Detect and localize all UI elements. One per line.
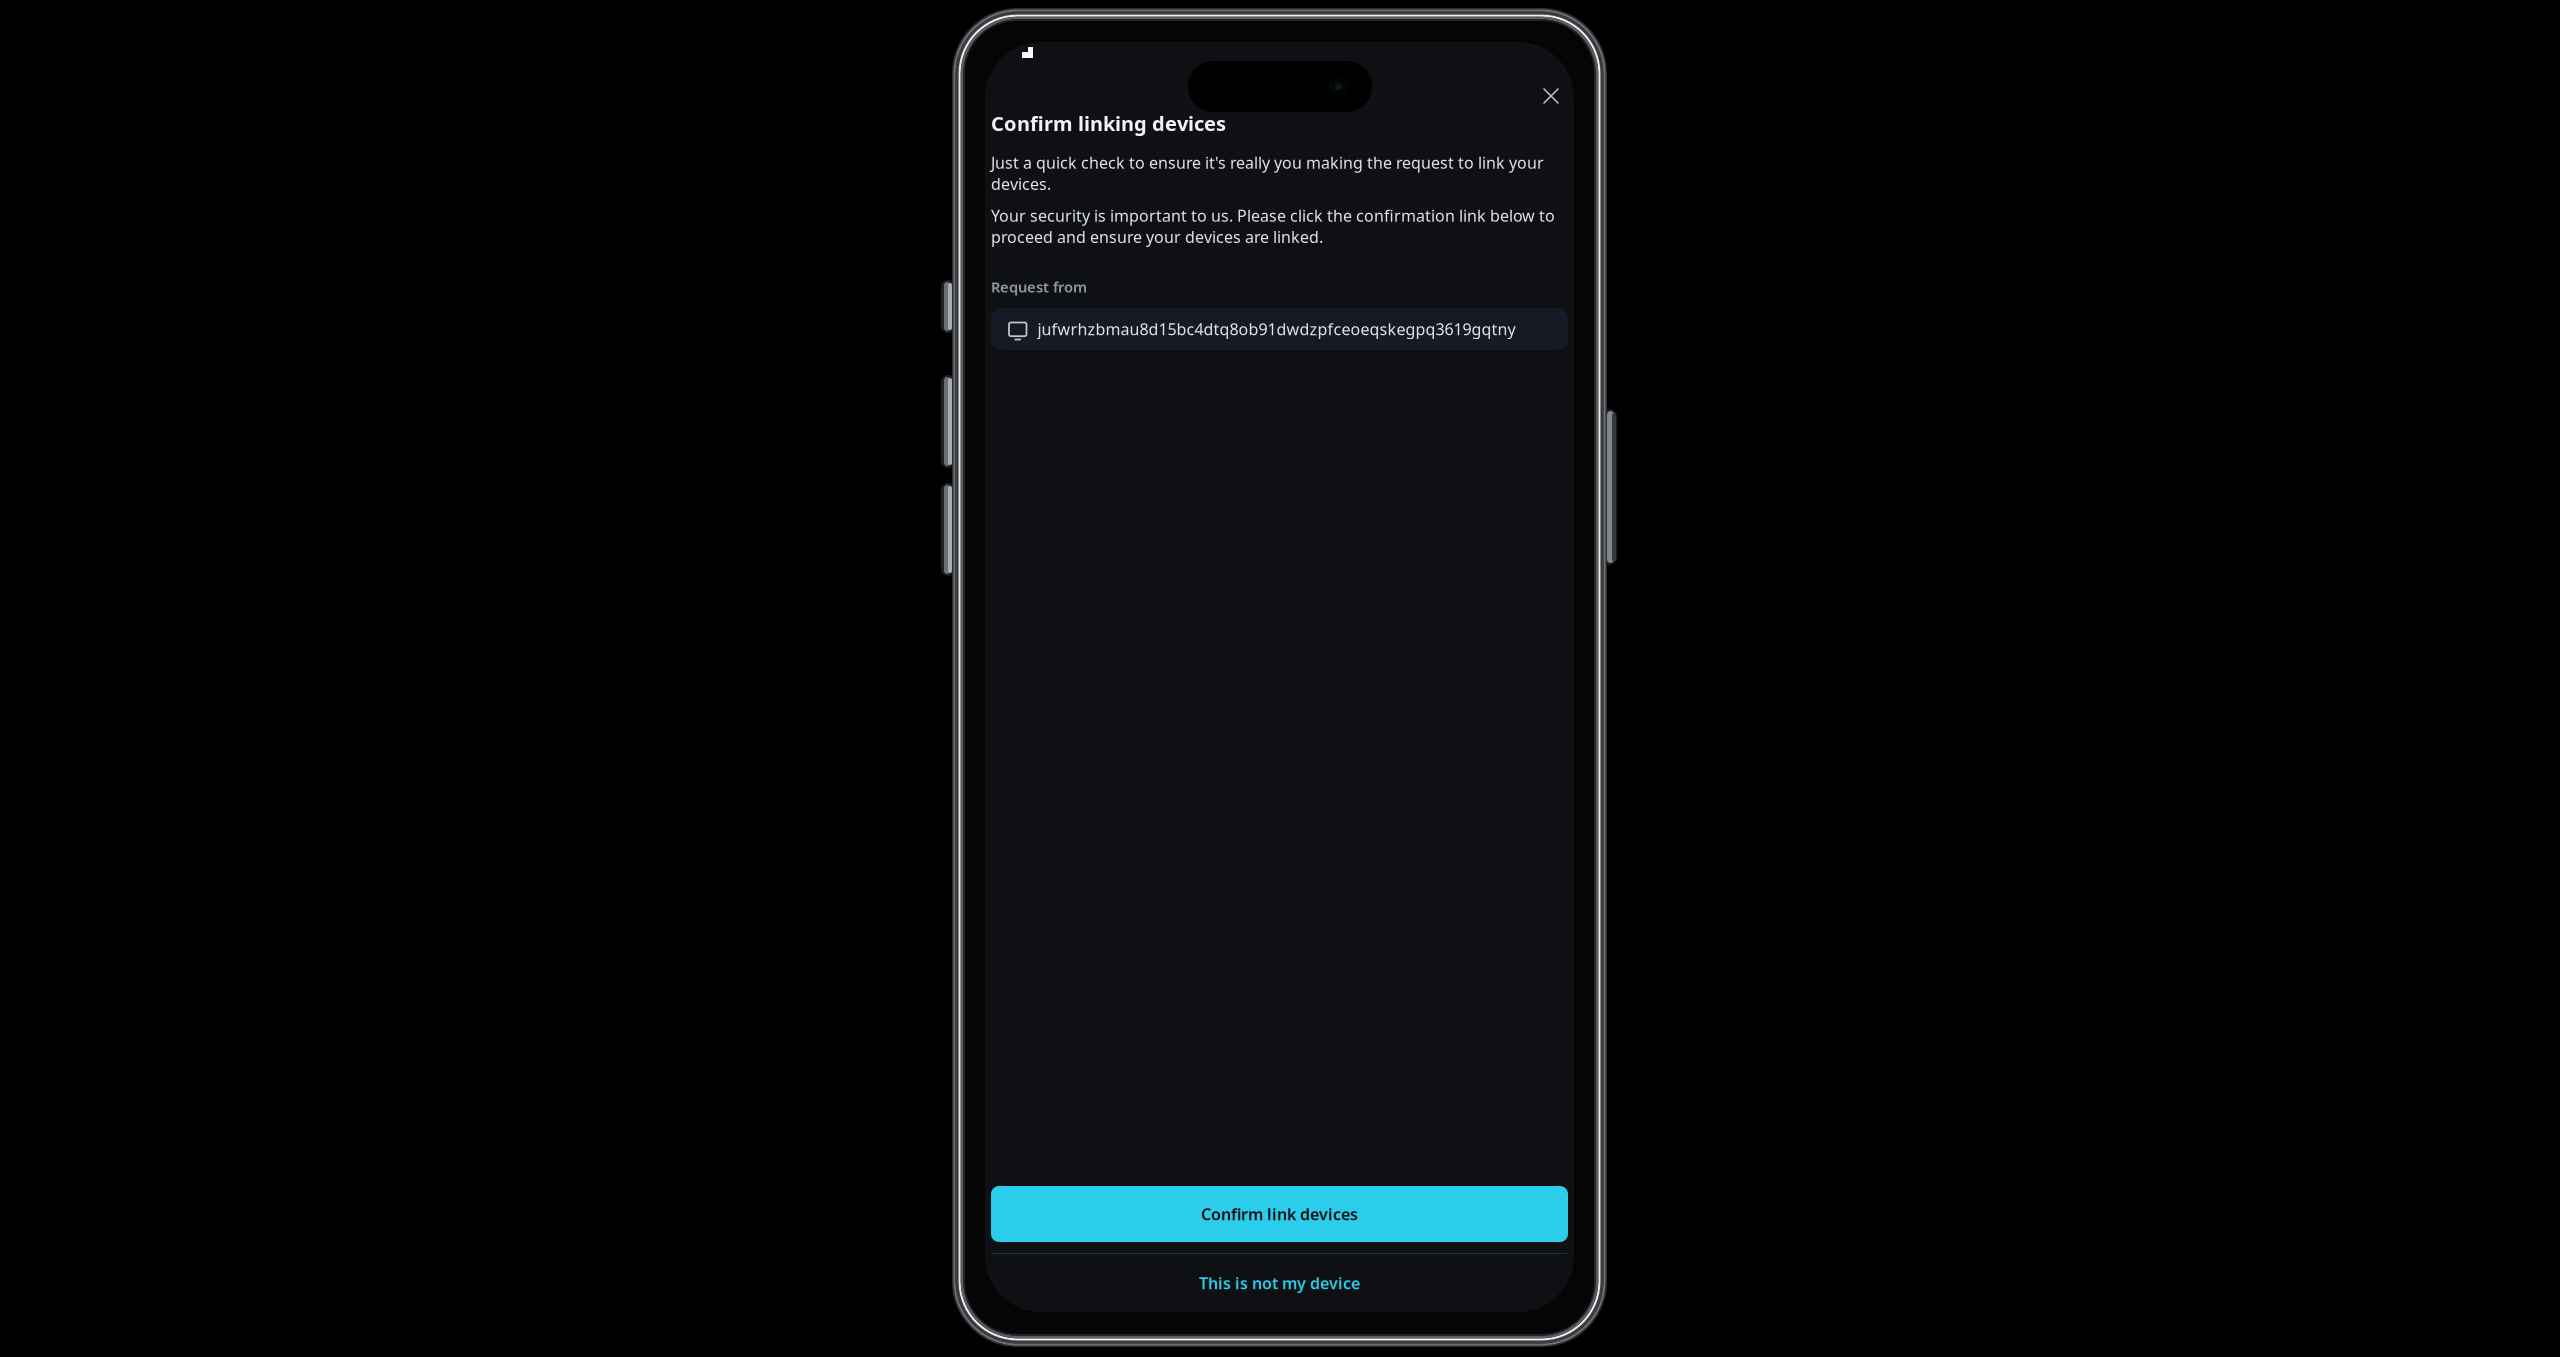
staticText: Confirm link devices — [1201, 1203, 1358, 1225]
staticText: Confirm linking devices — [991, 110, 1226, 137]
staticText: Your security is important to us. Please… — [991, 205, 1555, 247]
staticText: jufwrhzbmau8d15bc4dtq8ob91dwdzpfceoeqske… — [1037, 318, 1515, 340]
button[interactable]: This is not my device — [991, 1254, 1568, 1312]
staticText: This is not my device — [1199, 1272, 1360, 1294]
button[interactable]: Confirm link devices — [991, 1186, 1568, 1242]
staticText: Request from — [991, 277, 1087, 296]
button[interactable]: Close — [1529, 74, 1573, 118]
staticText: Just a quick check to ensure it's really… — [991, 152, 1544, 194]
